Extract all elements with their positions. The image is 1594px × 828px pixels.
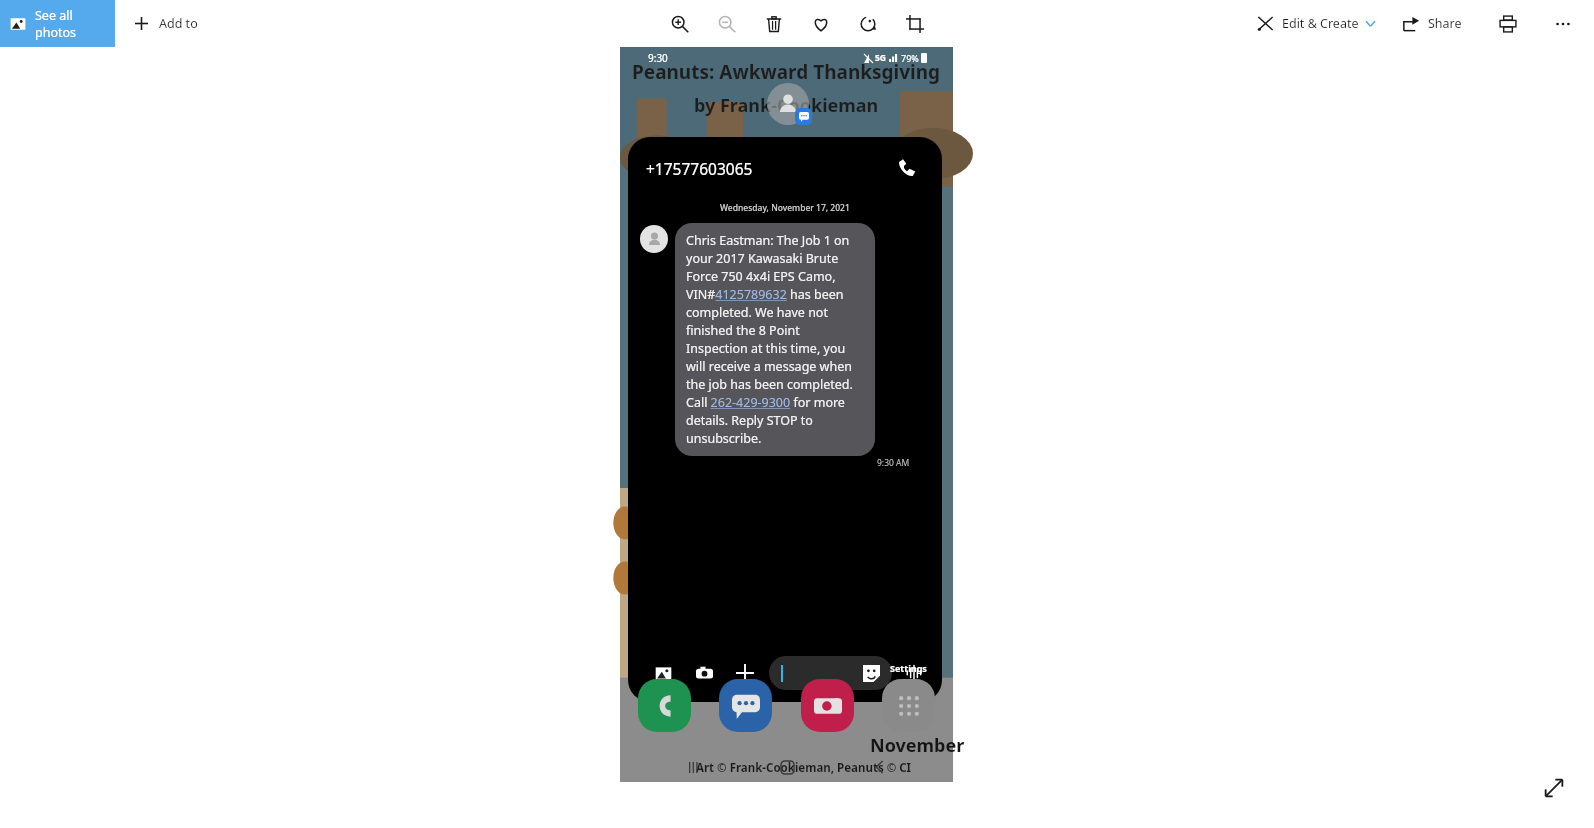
staticText: by Frank-Cookieman <box>694 93 879 118</box>
staticText: 9:30 AM <box>877 457 910 469</box>
button[interactable]: Expand to full screen <box>1536 770 1572 806</box>
button[interactable]: Apps <box>882 679 935 732</box>
button[interactable]: Print <box>1484 0 1531 47</box>
button[interactable]: +17577603065 <box>646 158 890 179</box>
button[interactable] <box>769 656 892 690</box>
button[interactable]: Add to <box>125 0 206 47</box>
button[interactable]: Phone <box>638 679 691 732</box>
staticText: Peanuts: Awkward Thanksgiving <box>632 59 941 85</box>
staticText: Wednesday, November 17, 2021 <box>720 202 850 214</box>
button[interactable]: Edit & Create <box>1249 0 1383 47</box>
staticText: Edit & Create <box>1282 15 1359 32</box>
button[interactable]: See all photos <box>0 0 115 47</box>
button[interactable]: See more <box>1539 0 1586 47</box>
staticText: Chris Eastman: The Job 1 on your 2017 Ka… <box>686 232 864 447</box>
button[interactable]: Zoom out <box>703 0 750 47</box>
button[interactable]: Home <box>774 754 800 780</box>
button[interactable]: Messages <box>719 679 772 732</box>
staticText: Settings <box>890 662 927 674</box>
button[interactable]: Camera <box>801 679 854 732</box>
staticText: 9:30 <box>648 51 668 65</box>
button[interactable]: Call <box>890 151 924 185</box>
staticText: Art © Frank-Cookieman, Peanuts © CI <box>696 760 912 776</box>
button[interactable]: Delete <box>750 0 797 47</box>
button[interactable]: Voice message <box>900 659 928 687</box>
button[interactable]: Back <box>867 754 893 780</box>
staticText: 5G <box>875 52 887 64</box>
button[interactable]: Camera <box>689 658 719 688</box>
button[interactable]: Crop <box>891 0 938 47</box>
button[interactable]: Share <box>1395 0 1470 47</box>
button[interactable]: Recents <box>680 754 706 780</box>
button[interactable]: Chris Eastman: The Job 1 on your 2017 Ka… <box>675 223 875 456</box>
button[interactable]: Rotate <box>844 0 891 47</box>
staticText: See all photos <box>35 7 115 41</box>
button[interactable]: Zoom in <box>656 0 703 47</box>
staticText: Add to <box>159 15 198 32</box>
staticText: 79% <box>901 52 919 64</box>
button[interactable]: Chat bubble <box>767 83 813 129</box>
staticText: November <box>870 733 965 758</box>
button[interactable]: Add to favourites <box>797 0 844 47</box>
button[interactable]: Gallery <box>648 658 678 688</box>
staticText: Share <box>1428 15 1462 32</box>
button[interactable]: More options <box>730 658 760 688</box>
